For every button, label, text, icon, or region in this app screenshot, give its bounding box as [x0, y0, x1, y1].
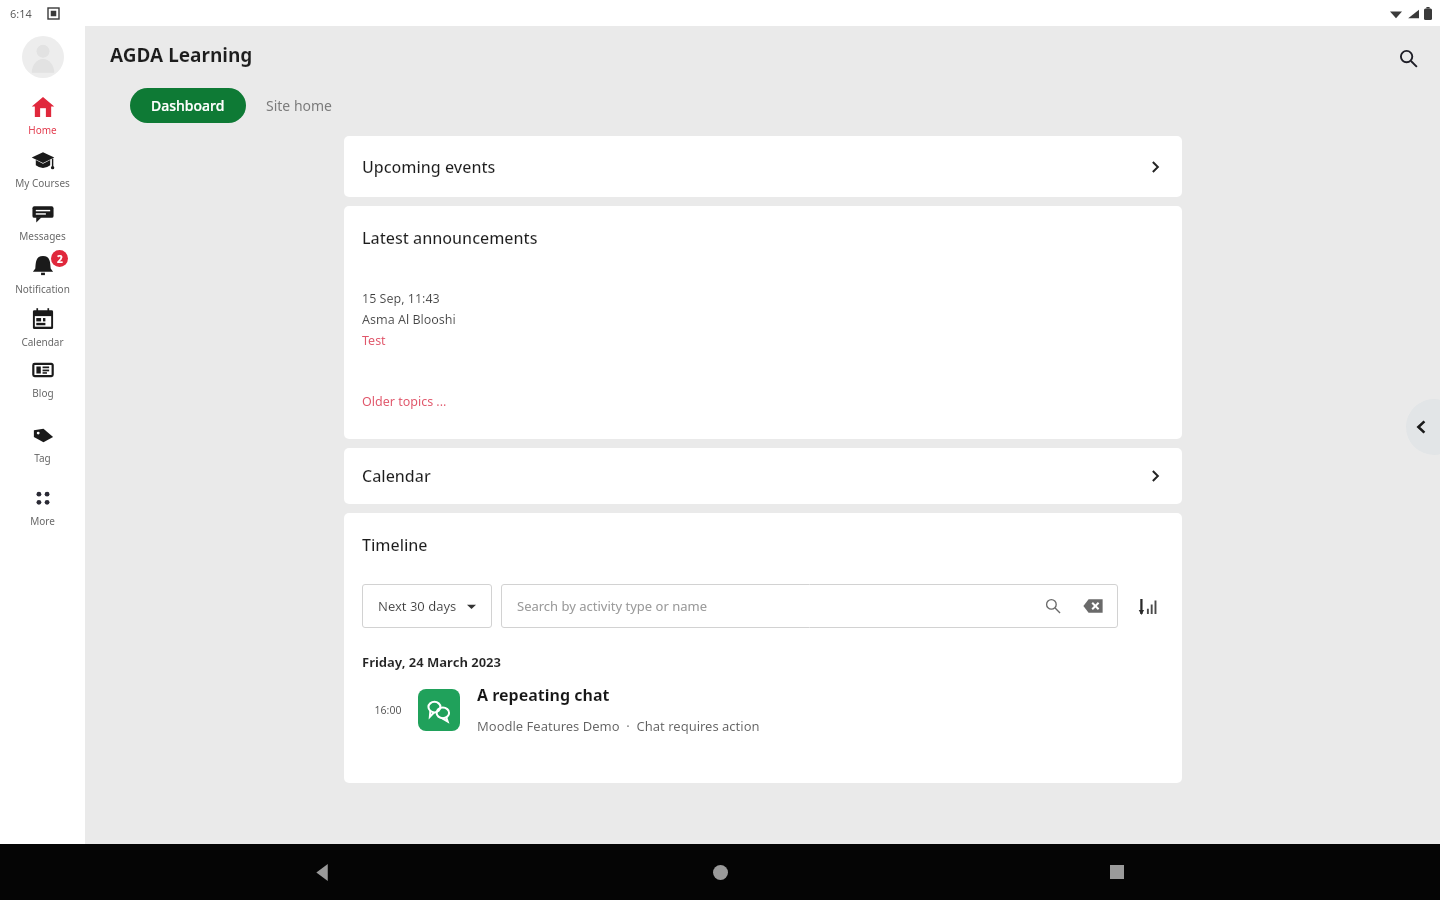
staticText: Next 30 days [378, 597, 457, 615]
staticText: My Courses [15, 176, 70, 190]
button[interactable]: 16:00 [362, 684, 1164, 735]
staticText: Dashboard [151, 96, 225, 115]
button[interactable]: Site home [246, 88, 352, 123]
button[interactable]: Recent apps [1094, 849, 1140, 895]
staticText: Notification [15, 282, 70, 296]
staticText: More [30, 514, 55, 528]
button[interactable]: Back [300, 849, 346, 895]
button[interactable]: 2 [0, 245, 85, 298]
button[interactable]: My Courses [0, 139, 85, 192]
staticText: Older topics ... [362, 393, 447, 410]
button[interactable]: Search [1040, 593, 1066, 619]
staticText: Latest announcements [362, 227, 538, 249]
button[interactable]: Calendar [0, 298, 85, 351]
staticText: Search by activity type or name [517, 597, 707, 615]
button[interactable]: Search by activity type or name [501, 584, 1118, 628]
button[interactable]: Home [0, 86, 85, 139]
staticText: Blog [32, 386, 54, 400]
staticText: Friday, 24 March 2023 [362, 653, 501, 671]
staticText: Messages [19, 229, 66, 243]
button[interactable]: Test [362, 332, 386, 349]
button[interactable]: Upcoming events [344, 136, 1182, 197]
staticText: 16:00 [362, 703, 414, 717]
button[interactable]: More [0, 477, 85, 530]
staticText: Home [28, 123, 57, 137]
staticText: A repeating chat [477, 684, 610, 706]
staticText: Moodle Features Demo · Chat requires act… [477, 717, 760, 735]
button[interactable]: Tag [0, 414, 85, 467]
button[interactable]: Clear search [1080, 593, 1106, 619]
staticText: Timeline [362, 534, 428, 556]
button[interactable]: Open side panel [1406, 399, 1440, 455]
button[interactable]: Next 30 days [362, 584, 492, 628]
staticText: 2 [57, 252, 63, 266]
button[interactable]: Home [697, 849, 743, 895]
staticText: AGDA Learning [110, 42, 253, 68]
staticText: Calendar [362, 465, 431, 487]
button[interactable]: Blog [0, 351, 85, 402]
button[interactable]: Sort [1130, 589, 1164, 623]
staticText: Tag [34, 451, 51, 465]
button[interactable]: Older topics ... [362, 393, 447, 410]
staticText: 15 Sep, 11:43 [362, 290, 440, 307]
staticText: Test [362, 332, 386, 349]
button[interactable]: Calendar [344, 448, 1182, 504]
staticText: 6:14 [10, 6, 32, 21]
staticText: Upcoming events [362, 156, 496, 178]
button[interactable]: Profile [22, 36, 64, 78]
button[interactable]: Messages [0, 192, 85, 245]
staticText: Calendar [21, 335, 64, 349]
button[interactable]: Dashboard [130, 88, 246, 123]
staticText: Site home [266, 96, 332, 115]
button[interactable]: Search [1386, 36, 1430, 80]
staticText: Asma Al Blooshi [362, 311, 456, 328]
